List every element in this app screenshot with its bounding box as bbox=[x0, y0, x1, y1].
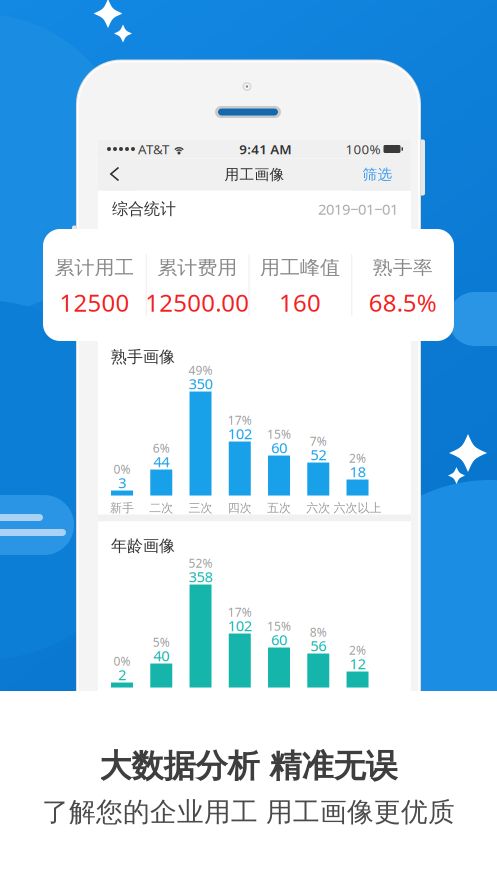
staticText: 二次 bbox=[149, 501, 173, 515]
staticText: 大数据分析 精准无误 bbox=[99, 746, 397, 786]
staticText: 49% bbox=[188, 362, 212, 378]
staticText: 102 bbox=[228, 616, 252, 635]
staticText: 新手 bbox=[110, 501, 134, 515]
staticText: 15% bbox=[267, 618, 291, 634]
staticText: 52 bbox=[310, 445, 326, 464]
staticText: 累计用工 bbox=[54, 255, 134, 280]
staticText: AT&T bbox=[138, 140, 169, 158]
staticText: 7% bbox=[310, 433, 327, 449]
staticText: 六次 bbox=[306, 501, 330, 515]
button[interactable]: Back bbox=[98, 158, 411, 190]
staticText: 350 bbox=[188, 374, 212, 393]
staticText: 0% bbox=[113, 653, 130, 669]
staticText: 三次 bbox=[188, 501, 212, 515]
staticText: 熟手率 bbox=[373, 255, 433, 280]
staticText: 68.5% bbox=[369, 287, 437, 318]
staticText: 12500.00 bbox=[145, 287, 249, 318]
staticText: 56 bbox=[310, 636, 326, 655]
staticText: 年龄画像 bbox=[111, 536, 175, 556]
staticText: 60 bbox=[271, 630, 287, 649]
staticText: 2 bbox=[118, 665, 126, 684]
staticText: 9:41 AM bbox=[239, 140, 291, 158]
staticText: 12500 bbox=[59, 287, 129, 318]
staticText: 12 bbox=[349, 654, 365, 673]
staticText: 了解您的企业用工 用工画像更优质 bbox=[42, 796, 455, 828]
staticText: 40 bbox=[153, 646, 169, 665]
staticText: 用工峰值 bbox=[260, 255, 340, 280]
staticText: 六次以上 bbox=[333, 501, 381, 515]
staticText: 2019−01−01 bbox=[318, 199, 398, 219]
staticText: 102 bbox=[228, 424, 252, 443]
staticText: 用工画像 bbox=[224, 165, 284, 183]
staticText: 44 bbox=[153, 452, 169, 471]
staticText: 2% bbox=[349, 450, 366, 466]
staticText: 四次 bbox=[228, 501, 252, 515]
staticText: 17% bbox=[228, 604, 252, 620]
staticText: 3 bbox=[118, 473, 126, 492]
staticText: 160 bbox=[279, 287, 321, 318]
staticText: 18 bbox=[349, 462, 365, 481]
staticText: 6% bbox=[153, 440, 170, 456]
staticText: 累计费用 bbox=[157, 255, 237, 280]
button[interactable]: 筛选 bbox=[98, 158, 411, 190]
staticText: 60 bbox=[271, 438, 287, 457]
staticText: 17% bbox=[228, 412, 252, 428]
staticText: 筛选 bbox=[362, 165, 392, 183]
staticText: 100% bbox=[345, 140, 380, 158]
staticText: 8% bbox=[310, 624, 327, 640]
staticText: 熟手画像 bbox=[111, 347, 175, 367]
staticText: 5% bbox=[153, 634, 170, 650]
staticText: 五次 bbox=[267, 501, 291, 515]
staticText: 综合统计 bbox=[112, 199, 176, 219]
staticText: 15% bbox=[267, 426, 291, 442]
staticText: 0% bbox=[113, 461, 130, 477]
staticText: 2% bbox=[349, 642, 366, 658]
staticText: 358 bbox=[188, 567, 212, 586]
staticText: 52% bbox=[188, 555, 212, 571]
